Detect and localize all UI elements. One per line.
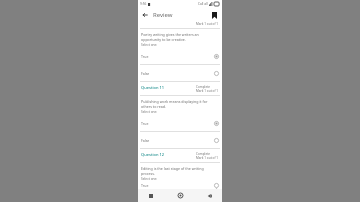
button[interactable]: Question 12 (138, 149, 222, 189)
button[interactable]: False (138, 132, 222, 148)
button[interactable]: Question 11 (138, 82, 222, 148)
staticText: Complete (196, 152, 211, 156)
staticText: Mark 1 out of 1 (196, 156, 219, 160)
button[interactable]: Home (176, 191, 185, 200)
staticText: Question 11 (141, 85, 165, 90)
staticText: True (141, 54, 149, 59)
staticText: Complete (196, 85, 211, 89)
staticText: Call all (198, 2, 208, 6)
staticText: Mark 1 out of 1 (196, 22, 219, 26)
button[interactable]: Recent apps (146, 191, 155, 200)
staticText: Editing is the last stage of the writing… (141, 166, 218, 176)
button[interactable]: True (138, 115, 222, 131)
staticText: False (141, 138, 150, 143)
button[interactable]: Bookmark (209, 10, 220, 21)
button[interactable]: Back (140, 10, 150, 20)
button[interactable]: True (138, 182, 222, 189)
staticText: Select one: (141, 43, 158, 47)
staticText: True (141, 183, 149, 188)
staticText: Review (153, 11, 173, 19)
staticText: 9:56 (140, 2, 147, 6)
button[interactable]: True (138, 48, 222, 64)
staticText: Poetry writing gives the writers an oppo… (141, 32, 218, 42)
staticText: False (141, 71, 150, 76)
staticText: Publishing work means displaying it for … (141, 99, 218, 109)
staticText: True (141, 121, 149, 126)
staticText: Mark 1 out of 1 (196, 89, 219, 93)
button[interactable]: Back (205, 191, 214, 200)
staticText: Select one: (141, 110, 158, 114)
staticText: Select one: (141, 177, 158, 181)
staticText: Question 12 (141, 152, 165, 157)
button[interactable]: False (138, 65, 222, 81)
